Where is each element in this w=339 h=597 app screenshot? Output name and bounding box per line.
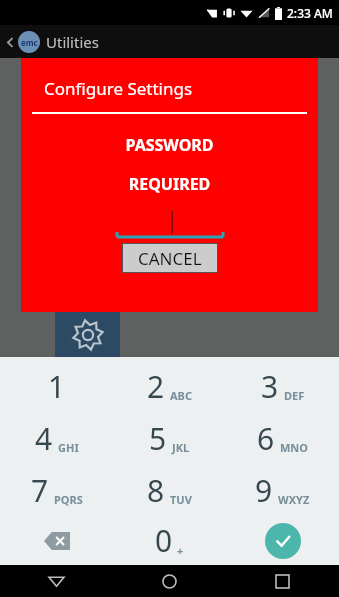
staticText: DEF — [284, 388, 305, 403]
button[interactable]: Backspace — [0, 516, 113, 565]
staticText: WXYZ — [278, 492, 310, 507]
button[interactable] — [55, 312, 120, 357]
button[interactable] — [21, 209, 318, 239]
button[interactable]: CANCEL — [122, 243, 218, 273]
button[interactable]: Home — [113, 565, 226, 597]
staticText: 0 — [155, 520, 173, 561]
staticText: GHI — [58, 440, 79, 455]
staticText: emc — [21, 37, 38, 48]
button[interactable]: 2 — [113, 360, 226, 412]
staticText: 2:33 AM — [287, 5, 333, 21]
staticText: JKL — [172, 440, 190, 455]
staticText: MNO — [280, 440, 309, 455]
button[interactable]: 6 — [226, 412, 339, 464]
button[interactable]: 3 — [226, 360, 339, 412]
staticText: CANCEL — [138, 247, 202, 270]
staticText: 9 — [255, 470, 273, 511]
staticText: 1 — [48, 366, 66, 407]
staticText: PASSWORD — [21, 134, 318, 156]
button[interactable]: Done — [226, 516, 339, 565]
staticText: ABC — [170, 388, 192, 403]
button[interactable]: 5 — [113, 412, 226, 464]
staticText: 4 — [35, 418, 53, 459]
button[interactable]: 4 — [0, 412, 113, 464]
button[interactable]: Back — [0, 565, 113, 597]
staticText: 2 — [147, 366, 165, 407]
staticText: 6 — [257, 418, 275, 459]
staticText: 3 — [261, 366, 279, 407]
button[interactable]: 8 — [113, 464, 226, 516]
button[interactable]: 1 — [0, 360, 113, 412]
staticText: TUV — [170, 492, 192, 507]
staticText: + — [177, 543, 184, 558]
staticText: 8 — [147, 470, 165, 511]
button[interactable]: 7 — [0, 464, 113, 516]
staticText: PQRS — [54, 492, 83, 507]
button[interactable]: 0 — [113, 516, 226, 565]
button[interactable]: Recents — [226, 565, 339, 597]
button[interactable]: 9 — [226, 464, 339, 516]
button[interactable]: Back — [5, 31, 99, 53]
staticText: Utilities — [46, 32, 99, 52]
staticText: 5 — [149, 418, 167, 459]
staticText: Configure Settings — [44, 77, 193, 100]
staticText: 7 — [31, 470, 49, 511]
staticText: REQUIRED — [21, 173, 318, 195]
